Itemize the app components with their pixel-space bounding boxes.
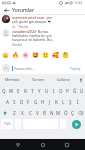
button[interactable]: Backspace bbox=[76, 107, 85, 118]
staticText: casadmn2023 Burası hakikaten harika bir … bbox=[12, 29, 55, 42]
button[interactable]: C bbox=[26, 107, 34, 118]
staticText: 10:24 bbox=[74, 1, 83, 5]
staticText: Ş bbox=[69, 99, 72, 105]
button[interactable]: Q bbox=[0, 85, 8, 96]
button[interactable]: Send bbox=[72, 120, 81, 129]
button[interactable]: X bbox=[18, 107, 26, 118]
button[interactable]: F bbox=[25, 96, 32, 107]
staticText: İ bbox=[77, 99, 79, 105]
button[interactable]: Emoji bbox=[60, 52, 70, 62]
button[interactable]: . bbox=[60, 119, 66, 129]
staticText: 🌸 bbox=[22, 52, 29, 59]
button[interactable]: H bbox=[39, 96, 46, 107]
button[interactable]: J bbox=[46, 96, 53, 107]
staticText: Yanıtla bbox=[12, 43, 22, 47]
button[interactable]: B bbox=[41, 107, 48, 118]
button[interactable]: Emoji bbox=[50, 52, 60, 62]
button[interactable]: T bbox=[29, 85, 36, 96]
button[interactable]: G bbox=[32, 96, 39, 107]
button[interactable]: Recents bbox=[61, 139, 73, 150]
button[interactable]: İ bbox=[74, 96, 81, 107]
staticText: Yorum ekle... bbox=[14, 66, 35, 71]
button[interactable]: I bbox=[50, 85, 57, 96]
button[interactable]: Y bbox=[36, 85, 43, 96]
button[interactable]: ?123 bbox=[1, 119, 13, 129]
button[interactable]: Ğ bbox=[71, 85, 78, 96]
staticText: , bbox=[18, 122, 19, 127]
staticText: Yorumlar bbox=[12, 7, 35, 14]
button[interactable]: N bbox=[48, 107, 55, 118]
button[interactable]: Emoji bbox=[20, 52, 30, 62]
staticText: Merhaba bbox=[5, 77, 20, 82]
button[interactable]: Emoji bbox=[30, 52, 40, 62]
staticText: E bbox=[17, 88, 20, 94]
button[interactable]: K bbox=[53, 96, 60, 107]
staticText: 🙂 bbox=[42, 52, 49, 59]
staticText: T bbox=[31, 88, 34, 94]
button[interactable]: Ş bbox=[67, 96, 74, 107]
button[interactable]: Paylaş bbox=[68, 65, 83, 72]
button[interactable]: U bbox=[43, 85, 50, 96]
button[interactable]: R bbox=[22, 85, 29, 96]
button[interactable]: V bbox=[34, 107, 41, 118]
button[interactable]: Emoji bbox=[0, 52, 10, 62]
staticText: V bbox=[36, 110, 39, 116]
button[interactable]: Shift bbox=[0, 107, 10, 118]
button[interactable]: Emoji bbox=[40, 52, 50, 62]
button[interactable]: S bbox=[11, 96, 18, 107]
staticText: A bbox=[6, 99, 9, 105]
button[interactable]: O bbox=[57, 85, 64, 96]
staticText: W bbox=[9, 88, 14, 94]
staticText: Ç bbox=[71, 110, 74, 116]
staticText: H bbox=[41, 99, 45, 105]
button[interactable]: Back bbox=[12, 139, 24, 150]
staticText: Ü bbox=[80, 88, 84, 94]
staticText: 🤔 bbox=[62, 52, 69, 59]
staticText: D bbox=[20, 99, 24, 105]
staticText: M bbox=[56, 110, 61, 116]
button[interactable]: Home bbox=[37, 139, 49, 150]
staticText: O bbox=[59, 88, 63, 94]
button[interactable]: casadmn2023 Burası hakikaten harika bir … bbox=[0, 29, 85, 47]
staticText: G bbox=[34, 99, 38, 105]
staticText: Y bbox=[38, 88, 41, 94]
staticText: . bbox=[63, 122, 64, 127]
button[interactable]: P bbox=[64, 85, 71, 96]
staticText: Ö bbox=[64, 110, 68, 116]
button[interactable]: kullanıcı bbox=[51, 74, 77, 85]
staticText: 🔥 bbox=[12, 52, 19, 59]
staticText: C bbox=[29, 110, 32, 116]
staticText: ?123 bbox=[4, 122, 11, 126]
button[interactable]: L bbox=[60, 96, 67, 107]
button[interactable]: D bbox=[18, 96, 25, 107]
button[interactable]: Voice input bbox=[77, 74, 85, 85]
staticText: 2s Yanıtla bbox=[12, 25, 29, 29]
button[interactable]: Ö bbox=[62, 107, 69, 118]
staticText: kullanıcı bbox=[57, 77, 71, 82]
staticText: Z bbox=[13, 110, 16, 116]
staticText: Paylaş bbox=[70, 66, 81, 71]
button[interactable]: Z bbox=[10, 107, 18, 118]
staticText: L bbox=[62, 99, 65, 105]
button[interactable]: Ç bbox=[69, 107, 76, 118]
staticText: N bbox=[50, 110, 54, 116]
button[interactable]: Ü bbox=[78, 85, 85, 96]
staticText: J bbox=[49, 99, 51, 105]
button[interactable]: marmarisotel.com yeri çok güzel görünüyo… bbox=[0, 15, 85, 29]
staticText: Q bbox=[2, 88, 6, 94]
button[interactable]: Merhaba bbox=[0, 74, 25, 85]
staticText: F bbox=[27, 99, 30, 105]
button[interactable]: , bbox=[15, 119, 21, 129]
button[interactable]: A bbox=[4, 96, 11, 107]
button[interactable]: W bbox=[8, 85, 15, 96]
staticText: S bbox=[13, 99, 16, 105]
button[interactable]: Tamam bbox=[25, 74, 51, 85]
button[interactable]: Emoji bbox=[10, 52, 20, 62]
staticText: 👑 bbox=[2, 52, 9, 59]
button[interactable]: M bbox=[55, 107, 62, 118]
button[interactable]: Back bbox=[2, 6, 10, 14]
staticText: K bbox=[55, 99, 58, 105]
button[interactable]: E bbox=[15, 85, 22, 96]
staticText: 🥰 bbox=[52, 52, 59, 59]
